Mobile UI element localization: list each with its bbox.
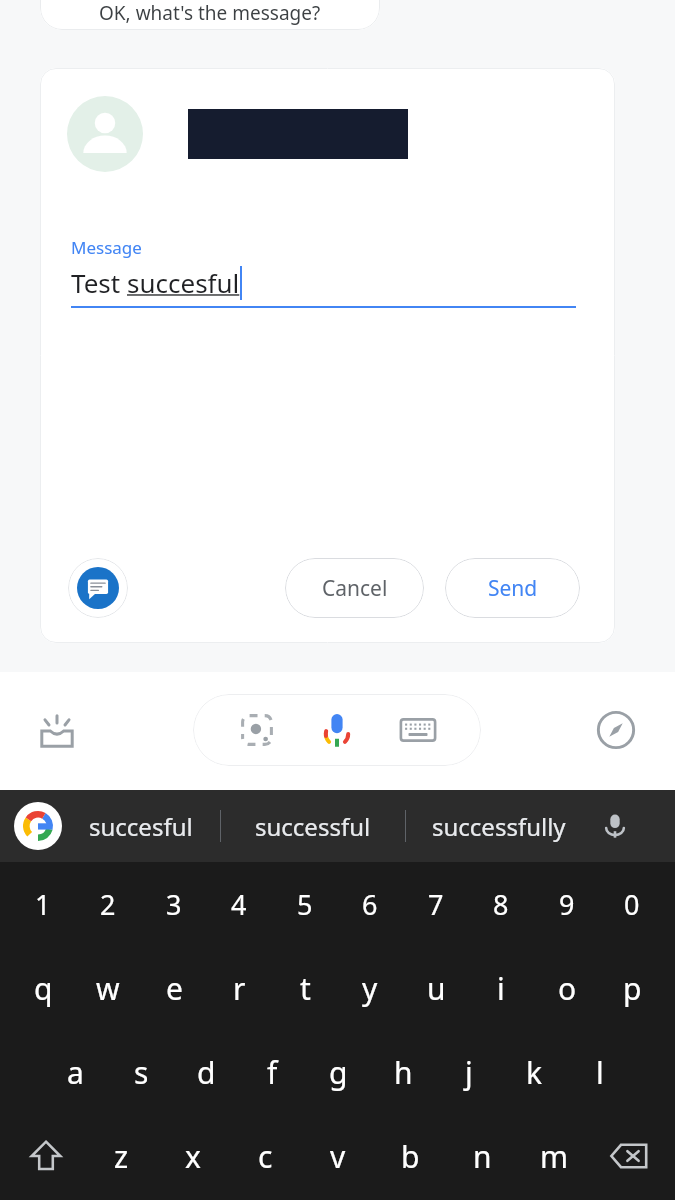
staticText: a: [67, 1052, 84, 1093]
staticText: e: [166, 968, 183, 1009]
button[interactable]: z: [94, 1116, 148, 1196]
button[interactable]: o: [540, 948, 594, 1028]
button[interactable]: Voice search: [308, 701, 366, 759]
button[interactable]: 2: [81, 864, 135, 944]
staticText: 0: [624, 886, 640, 923]
button[interactable]: Keyboard: [389, 701, 447, 759]
staticText: f: [267, 1052, 278, 1093]
staticText: r: [233, 968, 246, 1009]
button[interactable]: successful: [221, 790, 405, 862]
button[interactable]: Cancel: [285, 558, 424, 618]
button[interactable]: h: [376, 1032, 430, 1112]
staticText: 7: [428, 886, 444, 923]
staticText: x: [185, 1136, 201, 1177]
button[interactable]: OK, what's the message?: [40, 0, 380, 30]
staticText: Cancel: [322, 574, 388, 603]
staticText: 5: [297, 886, 313, 923]
staticText: c: [258, 1136, 273, 1177]
staticText: 9: [559, 886, 575, 923]
button[interactable]: p: [605, 948, 659, 1028]
button[interactable]: b: [383, 1116, 437, 1196]
button[interactable]: 5: [278, 864, 332, 944]
staticText: 4: [231, 886, 247, 923]
staticText: 3: [166, 886, 182, 923]
button[interactable]: t: [278, 948, 332, 1028]
button[interactable]: Explore: [586, 700, 646, 760]
button[interactable]: 9: [540, 864, 594, 944]
staticText: h: [394, 1052, 413, 1093]
staticText: 6: [362, 886, 378, 923]
button[interactable]: Voice input: [592, 803, 638, 849]
button[interactable]: g: [311, 1032, 365, 1112]
staticText: t: [300, 968, 311, 1009]
button[interactable]: c: [238, 1116, 292, 1196]
button[interactable]: 0: [605, 864, 659, 944]
button[interactable]: m: [527, 1116, 581, 1196]
button[interactable]: 7: [409, 864, 463, 944]
button[interactable]: a: [48, 1032, 102, 1112]
staticText: Send: [488, 574, 538, 603]
button[interactable]: w: [81, 948, 135, 1028]
staticText: o: [558, 968, 577, 1009]
button[interactable]: y: [343, 948, 397, 1028]
staticText: p: [623, 968, 642, 1009]
button[interactable]: Messages app: [68, 558, 128, 618]
button[interactable]: u: [409, 948, 463, 1028]
button[interactable]: i: [474, 948, 528, 1028]
button[interactable]: 8: [474, 864, 528, 944]
staticText: succesful: [89, 810, 193, 843]
staticText: 8: [493, 886, 509, 923]
button[interactable]: l: [573, 1032, 627, 1112]
staticText: y: [362, 968, 378, 1009]
staticText: u: [427, 968, 446, 1009]
staticText: succesful: [127, 265, 240, 300]
staticText: v: [330, 1136, 346, 1177]
button[interactable]: 6: [343, 864, 397, 944]
staticText: z: [114, 1136, 129, 1177]
staticText: d: [197, 1052, 216, 1093]
staticText: Test: [71, 265, 127, 300]
button[interactable]: x: [166, 1116, 220, 1196]
button[interactable]: d: [179, 1032, 233, 1112]
staticText: b: [401, 1136, 420, 1177]
staticText: Message: [71, 236, 142, 259]
staticText: successfully: [432, 810, 566, 843]
staticText: s: [134, 1052, 149, 1093]
button[interactable]: n: [455, 1116, 509, 1196]
button[interactable]: Google Lens: [228, 701, 286, 759]
button[interactable]: Backspace: [599, 1126, 659, 1186]
staticText: m: [540, 1136, 569, 1177]
button[interactable]: j: [442, 1032, 496, 1112]
button[interactable]: Send: [445, 558, 580, 618]
button[interactable]: v: [311, 1116, 365, 1196]
button[interactable]: Google: [14, 802, 62, 850]
staticText: OK, what's the message?: [99, 0, 321, 26]
button[interactable]: successfully: [406, 790, 592, 862]
staticText: n: [473, 1136, 492, 1177]
staticText: successful: [255, 810, 371, 843]
button[interactable]: Snapshot: [26, 700, 88, 762]
staticText: l: [596, 1052, 604, 1093]
button[interactable]: 1: [16, 864, 70, 944]
button[interactable]: q: [16, 948, 70, 1028]
button[interactable]: s: [114, 1032, 168, 1112]
staticText: g: [329, 1052, 348, 1093]
button[interactable]: Shift: [16, 1126, 76, 1186]
staticText: k: [526, 1052, 543, 1093]
button[interactable]: f: [245, 1032, 299, 1112]
staticText: 2: [100, 886, 116, 923]
button[interactable]: 3: [147, 864, 201, 944]
staticText: j: [465, 1052, 473, 1093]
staticText: i: [497, 968, 505, 1009]
button[interactable]: e: [147, 948, 201, 1028]
button[interactable]: r: [212, 948, 266, 1028]
button[interactable]: k: [507, 1032, 561, 1112]
staticText: w: [96, 968, 120, 1009]
staticText: 1: [35, 886, 51, 923]
button[interactable]: 4: [212, 864, 266, 944]
staticText: q: [34, 968, 53, 1009]
button[interactable]: succesful: [62, 790, 220, 862]
